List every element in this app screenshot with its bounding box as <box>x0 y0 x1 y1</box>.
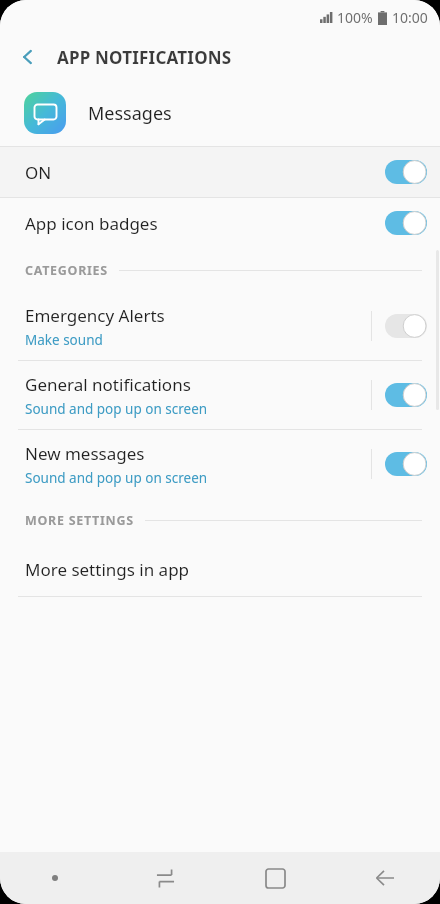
button[interactable]: Back <box>8 37 48 77</box>
button[interactable]: ON on <box>372 147 440 197</box>
staticText: Sound and pop up on screen <box>25 400 208 418</box>
button[interactable]: Back <box>330 852 440 904</box>
staticText: More settings in app <box>25 558 190 581</box>
button[interactable]: Messages <box>0 80 440 146</box>
button[interactable]: Menu indicator <box>0 852 110 904</box>
button[interactable]: New messages <box>0 430 440 498</box>
staticText: Sound and pop up on screen <box>25 469 208 487</box>
button[interactable]: Recents <box>110 852 220 904</box>
staticText: Make sound <box>25 331 103 349</box>
staticText: Emergency Alerts <box>25 304 165 327</box>
button[interactable]: General notifications <box>0 361 440 429</box>
staticText: 100% <box>337 8 373 27</box>
button[interactable]: New messages on <box>372 430 440 498</box>
staticText: App icon badges <box>25 212 158 235</box>
button[interactable]: App icon badges on <box>372 198 440 248</box>
button[interactable]: Home <box>220 852 330 904</box>
button[interactable]: Emergency Alerts <box>0 292 440 360</box>
staticText: CATEGORIES <box>25 262 108 279</box>
button[interactable]: Emergency Alerts off <box>372 292 440 360</box>
staticText: Messages <box>88 101 172 126</box>
staticText: APP NOTIFICATIONS <box>57 46 232 69</box>
button[interactable]: App icon badges <box>0 198 440 248</box>
staticText: 10:00 <box>392 8 428 27</box>
button[interactable]: More settings in app <box>0 542 440 596</box>
staticText: General notifications <box>25 373 191 396</box>
button[interactable]: General notifications on <box>372 361 440 429</box>
staticText: New messages <box>25 442 145 465</box>
staticText: ON <box>25 161 52 184</box>
staticText: MORE SETTINGS <box>25 512 134 529</box>
button[interactable]: ON <box>0 147 440 197</box>
